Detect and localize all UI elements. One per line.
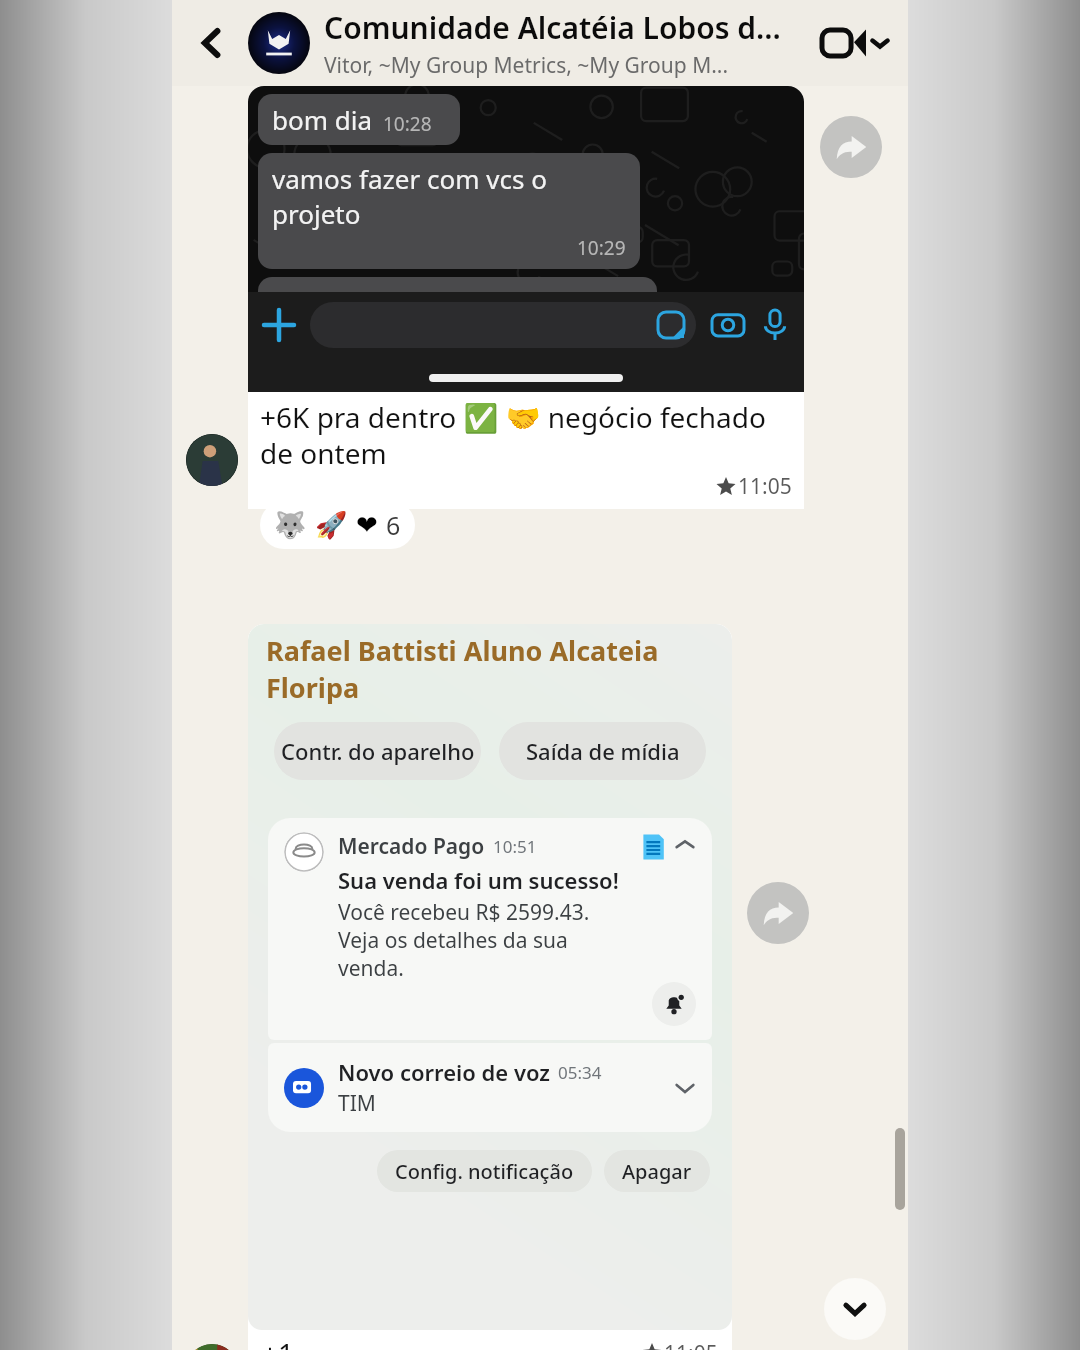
staticText: TIM — [338, 1089, 376, 1118]
staticText: Sua venda foi um sucesso! — [338, 865, 619, 895]
staticText: Você recebeu R$ 2599.43. Veja os detalhe… — [338, 898, 630, 982]
staticText: 11:05 — [664, 1339, 718, 1350]
button[interactable]: Saída de mídia — [499, 722, 706, 780]
button[interactable]: Config. notificação — [377, 1150, 592, 1192]
button[interactable]: 🐺 — [274, 508, 401, 542]
staticText: Saída de mídia — [526, 736, 680, 766]
staticText: 11:05 — [738, 472, 792, 501]
staticText: Vitor, ~My Group Metrics, ~My Group M... — [324, 51, 729, 80]
staticText: 10:51 — [493, 835, 537, 858]
staticText: Mercado Pago — [338, 832, 485, 861]
button[interactable]: Forward — [747, 882, 809, 944]
button[interactable]: Scroll to bottom — [824, 1278, 886, 1340]
button[interactable]: Forward — [820, 116, 882, 178]
staticText: +6K pra dentro ✅ 🤝 negócio fechado de on… — [260, 398, 792, 472]
button[interactable]: Rafael Battisti Aluno Alcateia Floripa — [248, 624, 732, 1350]
staticText: 6 — [386, 508, 401, 542]
button[interactable]: bom dia — [248, 86, 804, 509]
staticText: Contr. do aparelho — [281, 736, 475, 766]
button[interactable]: Silence notifications — [652, 982, 696, 1026]
button[interactable]: Mercado Pago — [268, 818, 712, 1040]
button[interactable]: Back — [186, 17, 238, 69]
button[interactable]: Video call — [818, 26, 894, 60]
staticText: 🚀 — [315, 510, 348, 540]
staticText: bom dia — [272, 102, 373, 137]
button[interactable] — [186, 1344, 238, 1350]
staticText: como damos sequencia? — [272, 285, 572, 320]
staticText: Apagar — [622, 1158, 692, 1185]
button[interactable]: Comunidade Alcatéia Lobos d... — [324, 7, 810, 80]
staticText: 🐺 — [274, 510, 307, 540]
button[interactable]: Novo correio de voz — [268, 1043, 712, 1132]
button[interactable]: Apagar — [604, 1150, 710, 1192]
staticText: 10:30 — [582, 294, 631, 320]
staticText: vamos fazer com vcs o projeto — [272, 161, 626, 231]
staticText: Novo correio de voz — [338, 1057, 550, 1087]
staticText: Config. notificação — [395, 1158, 574, 1185]
button[interactable]: Contr. do aparelho — [274, 722, 481, 780]
staticText: ❤️ — [356, 510, 378, 540]
staticText: +1 — [262, 1334, 295, 1350]
staticText: 10:28 — [383, 111, 432, 137]
button[interactable] — [186, 434, 238, 486]
staticText: Rafael Battisti Aluno Alcateia Floripa — [266, 632, 732, 706]
staticText: 05:34 — [558, 1061, 602, 1084]
staticText: 10:29 — [577, 235, 626, 261]
staticText: Comunidade Alcatéia Lobos d... — [324, 7, 781, 48]
